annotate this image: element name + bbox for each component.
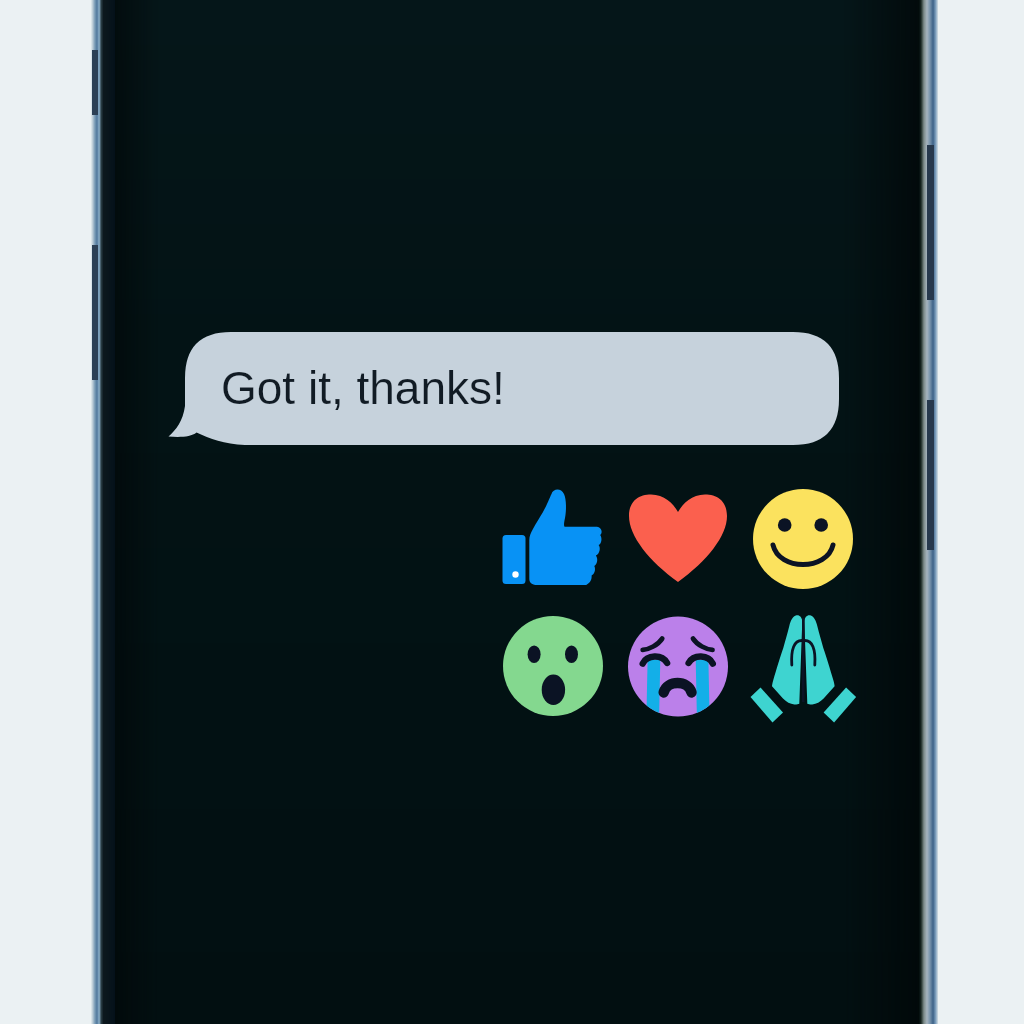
- staticText: Got it, thanks!: [221, 362, 505, 413]
- button[interactable]: Thumbs up reaction: [491, 478, 615, 602]
- button[interactable]: Smiling face reaction: [739, 478, 863, 602]
- button[interactable]: Crying face reaction: [615, 602, 739, 726]
- button[interactable]: Praying hands reaction: [739, 602, 863, 726]
- button[interactable]: Surprised face reaction: [491, 602, 615, 726]
- button[interactable]: Heart reaction: [615, 478, 739, 602]
